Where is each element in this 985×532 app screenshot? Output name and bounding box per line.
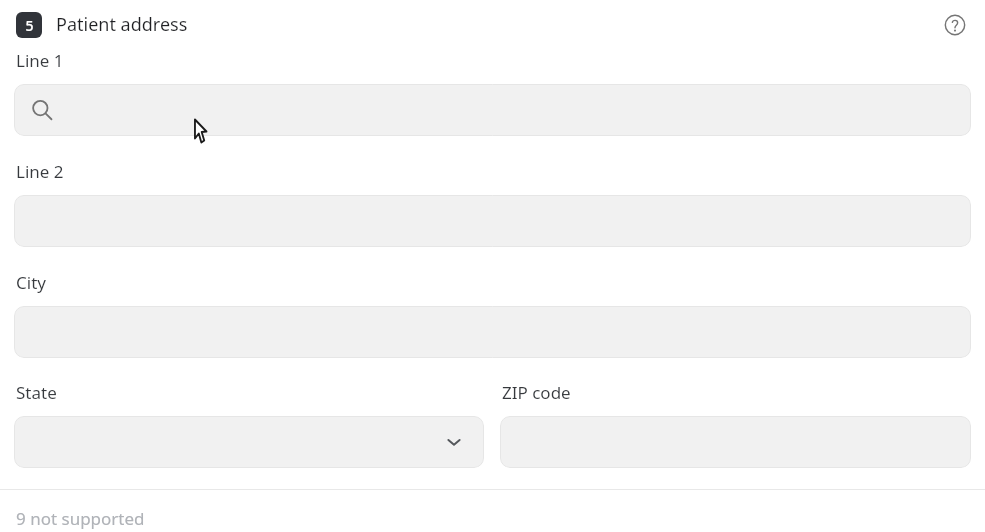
staticText: Line 2 (16, 160, 64, 183)
staticText: Patient address (56, 12, 188, 37)
staticText: 5 (25, 16, 34, 35)
staticText: ZIP code (502, 381, 571, 404)
staticText: Line 1 (16, 49, 64, 72)
staticText: 9 not supported (16, 507, 145, 530)
button[interactable]: Help (939, 9, 971, 41)
button[interactable] (14, 84, 971, 136)
staticText: City (16, 271, 46, 294)
button[interactable]: State (14, 416, 484, 468)
staticText: State (16, 381, 57, 404)
